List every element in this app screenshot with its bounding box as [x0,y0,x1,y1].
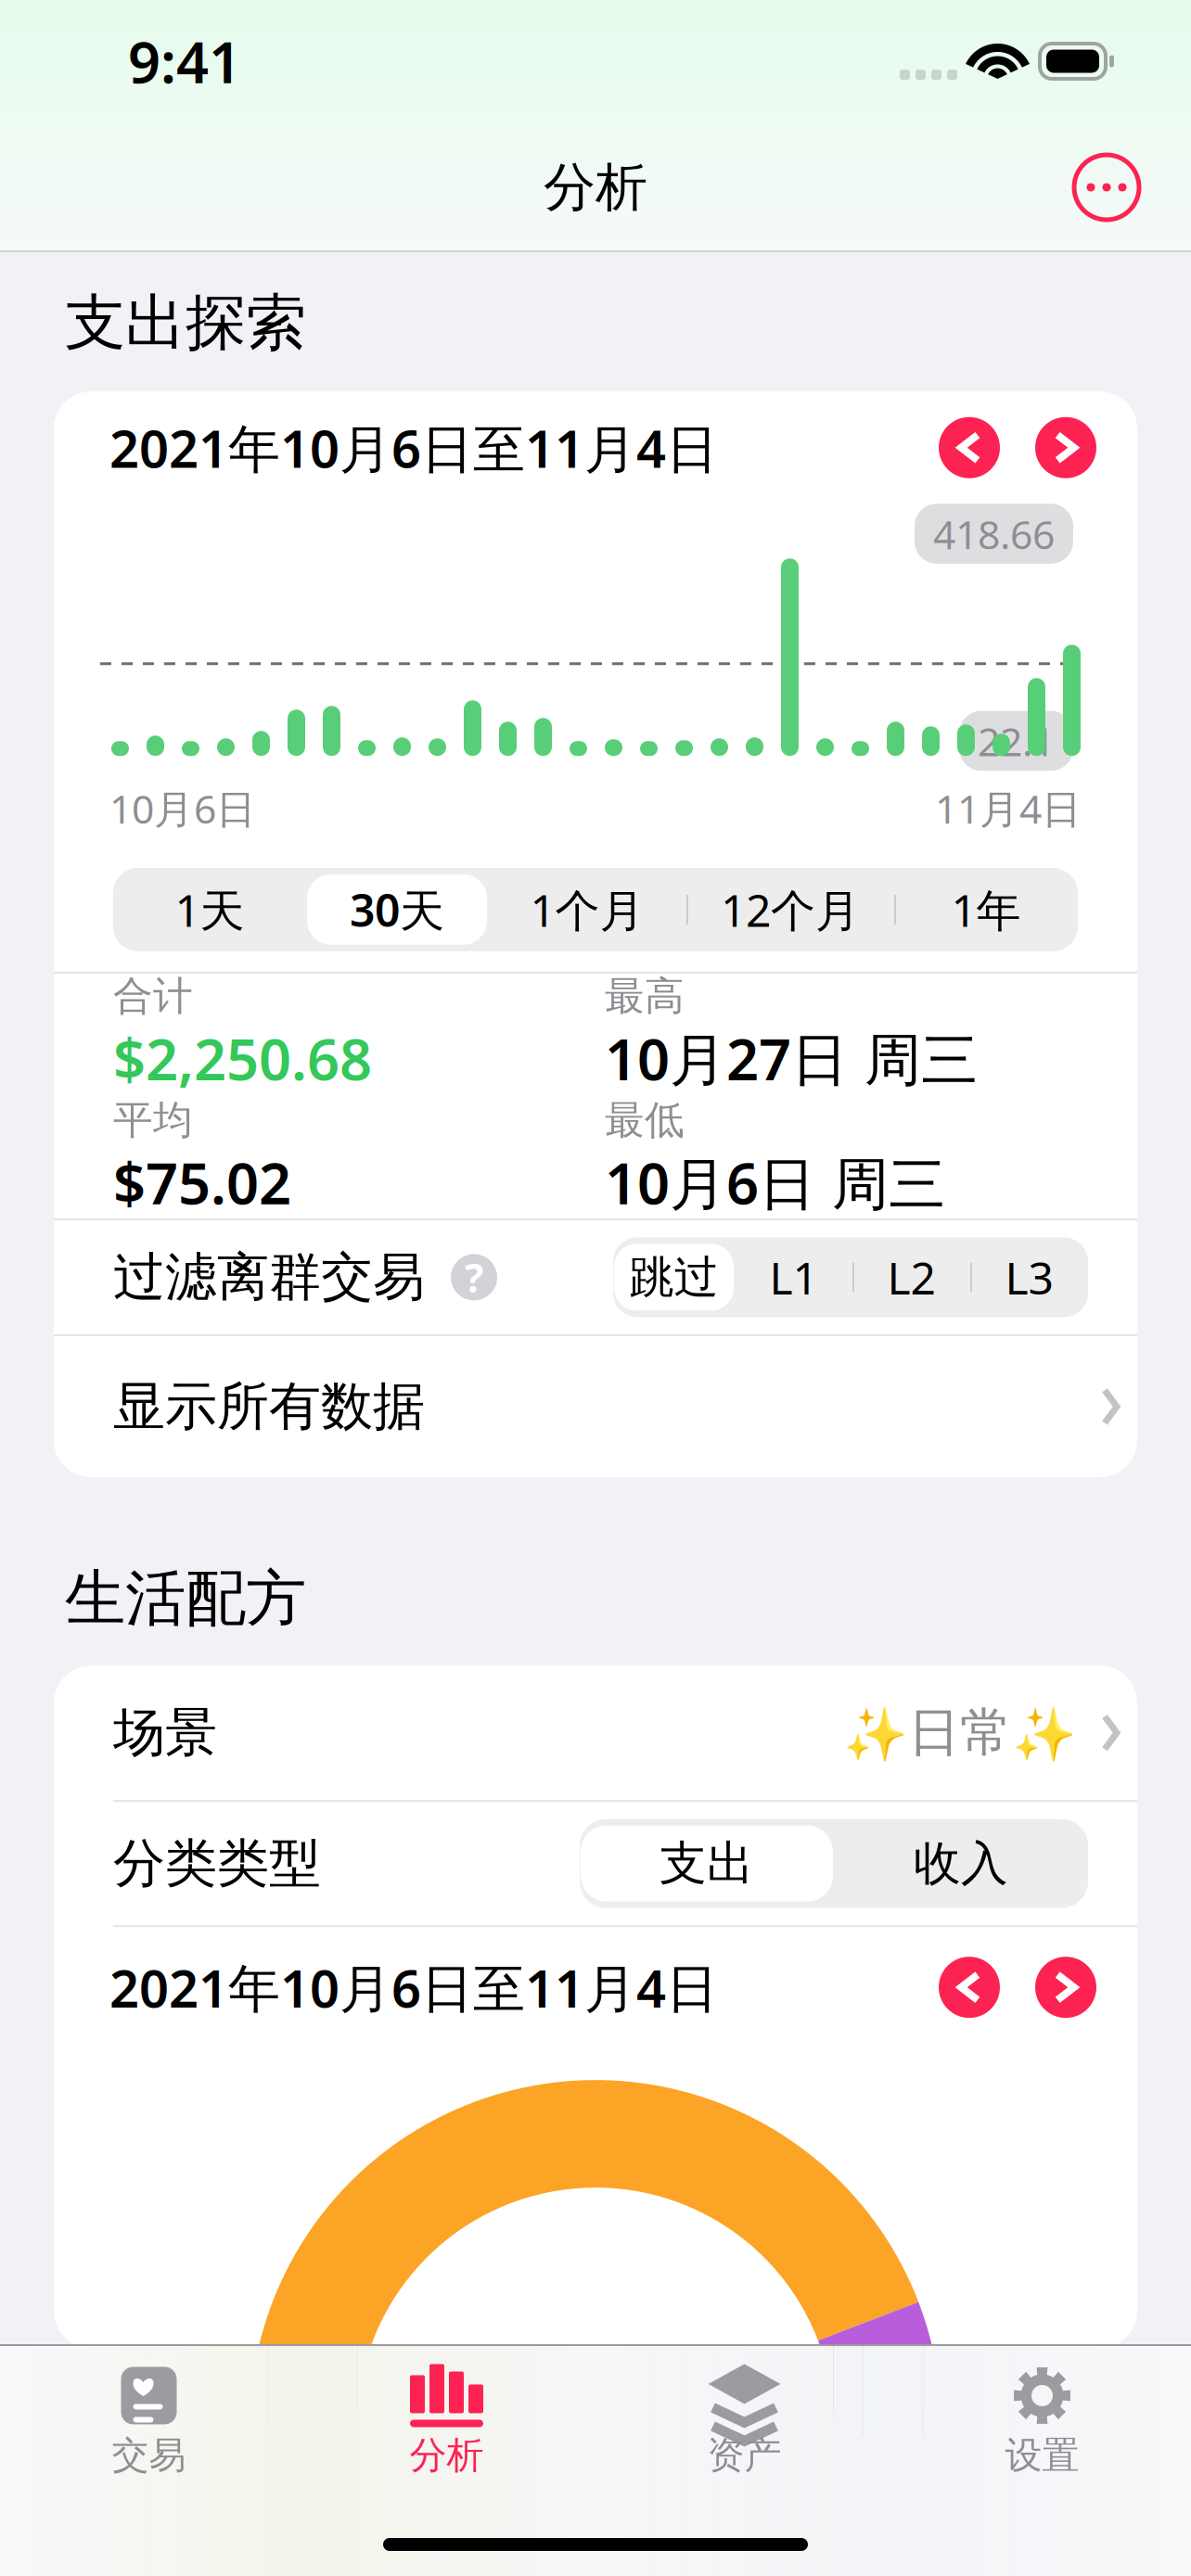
button[interactable]: 场景 [54,1666,1137,1800]
staticText: L2 [887,1248,935,1307]
staticText: 9:41 [128,23,241,99]
staticText: 资产 [707,2433,781,2478]
button[interactable]: L2 [852,1237,970,1317]
staticText: ? [465,1251,483,1304]
staticText: 合计 [113,972,193,1020]
staticText: ✨日常✨ [843,1701,1077,1765]
button[interactable]: Next period [1035,417,1096,478]
staticText: $75.02 [113,1145,291,1220]
staticText: 生活配方 [65,1561,306,1636]
staticText: 收入 [914,1835,1008,1892]
staticText: 2021年10月6日至11月4日 [109,413,718,482]
staticText: 最低 [605,1096,685,1145]
button[interactable]: 资产 [595,2345,893,2478]
staticText: 设置 [1005,2433,1079,2478]
button[interactable]: 设置 [893,2345,1191,2478]
staticText: 支出探索 [65,286,306,360]
staticText: 分析 [410,2433,484,2478]
button[interactable]: 收入 [834,1819,1088,1908]
staticText: L1 [769,1248,818,1307]
button[interactable]: 显示所有数据 [54,1336,1137,1477]
staticText: 10月27日 周三 [605,1020,978,1096]
staticText: 30天 [350,880,444,939]
staticText: 1年 [951,880,1021,939]
staticText: L3 [1005,1248,1053,1307]
staticText: 12个月 [721,880,860,939]
button[interactable]: 1个月 [488,868,686,951]
staticText: 分析 [544,155,647,219]
staticText: 1个月 [530,880,644,939]
staticText: 1天 [175,880,244,939]
button[interactable]: 交易 [0,2345,298,2478]
button[interactable]: Previous period [939,417,1000,478]
button[interactable]: 1年 [894,868,1078,951]
button[interactable]: 分析 [298,2345,595,2478]
button[interactable]: 支出 [580,1819,834,1908]
staticText: 平均 [113,1096,193,1145]
staticText: 支出 [660,1835,754,1892]
button[interactable]: Next period [1035,1957,1096,2018]
button[interactable]: L1 [735,1237,852,1317]
button[interactable]: 1天 [113,868,306,951]
button[interactable]: 12个月 [686,868,894,951]
staticText: 10月6日 [109,782,256,834]
staticText: 11月4日 [935,782,1082,834]
staticText: 22.1 [978,715,1055,767]
button[interactable]: Previous period [939,1957,1000,2018]
staticText: 显示所有数据 [113,1375,425,1438]
staticText: 418.66 [933,507,1055,560]
staticText: 场景 [113,1701,217,1765]
button[interactable]: L3 [970,1237,1088,1317]
staticText: $2,250.68 [113,1020,372,1096]
staticText: 跳过 [629,1250,718,1305]
staticText: 最高 [605,972,685,1020]
staticText: 过滤离群交易 [113,1245,425,1309]
button[interactable]: 30天 [306,868,488,951]
staticText: 10月6日 周三 [605,1145,945,1220]
button[interactable]: 跳过 [613,1237,735,1317]
staticText: 2021年10月6日至11月4日 [109,1953,718,2022]
staticText: 分类类型 [113,1832,321,1895]
button[interactable]: More options [1074,155,1139,220]
staticText: 交易 [112,2433,186,2478]
